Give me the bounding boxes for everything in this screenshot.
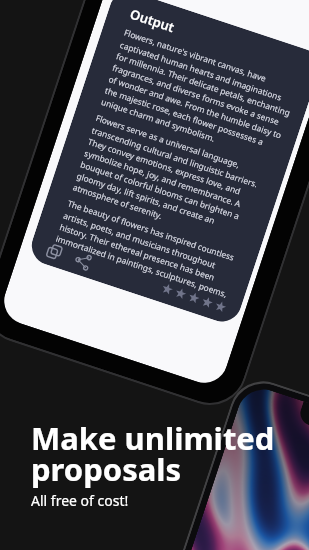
staticText: All free of cost!: [31, 491, 129, 510]
staticText: Make unlimited proposals: [31, 417, 275, 490]
staticText: Output: [128, 5, 177, 36]
staticText: Flowers, nature's vibrant canvas, have c…: [100, 27, 300, 164]
staticText: The beauty of flowers has inspired count…: [55, 197, 243, 300]
staticText: Flowers serve as a universal language, t…: [72, 112, 272, 249]
